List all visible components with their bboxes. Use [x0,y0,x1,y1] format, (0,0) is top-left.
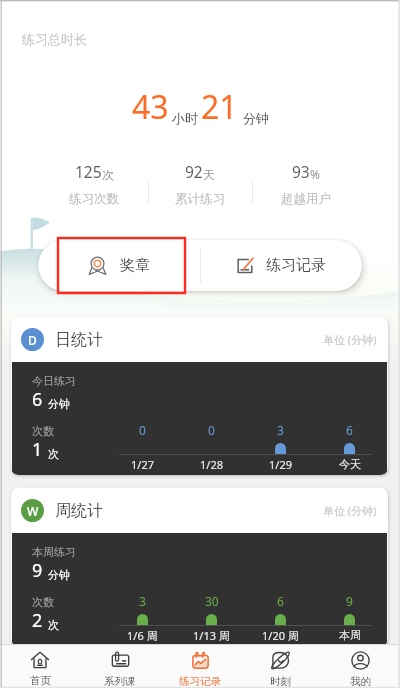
staticText: 超越用户 [281,191,331,207]
staticText: 练习总时长 [22,31,87,47]
staticText: 分钟 [48,568,70,582]
staticText: 我的 [350,675,371,688]
staticText: 3 [139,593,146,609]
button[interactable]: 系列课 [80,645,160,688]
staticText: 系列课 [104,675,136,688]
staticText: 3 [277,422,284,438]
staticText: 首页 [30,674,51,687]
staticText: 1/6 周 [127,628,158,643]
staticText: 6 [32,387,43,412]
staticText: 92 [185,161,203,182]
staticText: 1/29 [269,457,292,472]
staticText: 日统计 [55,330,103,350]
button[interactable]: 练习记录 [200,240,362,291]
button[interactable]: 我的 [320,645,400,688]
staticText: 9 [32,558,43,583]
button[interactable]: 练习记录 [160,645,240,688]
staticText: 今日练习 [32,374,76,388]
staticText: 次 [48,618,59,632]
staticText: 单位 (分钟) [323,332,377,347]
staticText: 0 [208,422,215,438]
staticText: 21 [201,85,238,129]
staticText: 43 [132,85,169,129]
staticText: 次 [102,167,114,182]
staticText: 本周 [339,628,361,642]
staticText: 天 [203,167,215,182]
staticText: % [310,166,320,182]
staticText: 分钟 [48,397,70,411]
staticText: 6 [277,593,284,609]
staticText: W [27,503,39,519]
staticText: 累计练习 [175,191,225,207]
staticText: 0 [139,422,146,438]
staticText: 单位 (分钟) [323,503,377,518]
staticText: 6 [346,422,353,438]
staticText: 1/13 周 [193,628,230,643]
staticText: 1 [32,437,43,462]
staticText: 奖章 [120,256,150,275]
staticText: 93 [292,161,310,182]
button[interactable]: 首页 [0,645,80,688]
button[interactable]: D [11,317,388,475]
staticText: 9 [346,593,353,609]
staticText: 今天 [339,457,361,471]
staticText: 练习记录 [266,256,326,275]
button[interactable]: 奖章 [38,240,200,291]
staticText: 分钟 [243,110,269,126]
staticText: 时刻 [270,675,291,688]
staticText: 小时 [172,110,198,126]
button[interactable]: 时刻 [240,645,320,688]
staticText: 1/27 [131,457,154,472]
staticText: 30 [205,593,219,609]
staticText: 次 [48,447,59,461]
staticText: 周统计 [55,501,103,521]
staticText: 次数 [32,595,54,609]
staticText: 练习记录 [179,675,221,688]
staticText: 125 [75,161,102,182]
staticText: 次数 [32,424,54,438]
button[interactable]: W [11,488,388,646]
staticText: 练习次数 [69,191,119,207]
staticText: D [28,332,37,348]
staticText: 1/28 [200,457,223,472]
staticText: 1/20 周 [262,628,299,643]
staticText: 本周练习 [32,545,76,559]
staticText: 2 [32,608,43,633]
